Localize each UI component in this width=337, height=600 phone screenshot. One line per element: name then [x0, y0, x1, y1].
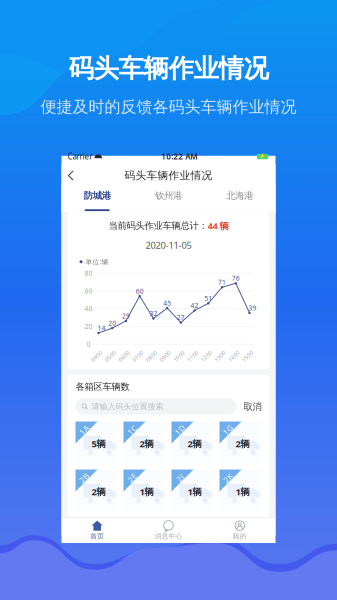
staticText: 11:00 [186, 353, 199, 360]
staticText: 10:22 AM [161, 151, 197, 162]
staticText: 2辆 [139, 437, 153, 450]
staticText: 2B [79, 473, 89, 483]
staticText: 请输入码头位置搜索 [91, 402, 163, 411]
staticText: 10:00 [172, 353, 185, 360]
staticText: 14:00 [227, 353, 240, 360]
staticText: 当前码头作业车辆总计： [108, 220, 207, 231]
staticText: 5辆 [91, 437, 105, 450]
staticText: 钦州港 [155, 190, 182, 201]
staticText: 60 [84, 286, 92, 295]
staticText: 1G [222, 425, 233, 435]
button[interactable]: 首页 [61, 518, 133, 543]
staticText: 12:00 [200, 353, 213, 360]
button[interactable]: 1D [171, 421, 213, 463]
staticText: 45 [163, 299, 171, 308]
staticText: 1辆 [187, 485, 201, 498]
staticText: Carrier [67, 151, 92, 162]
staticText: 40 [84, 304, 92, 313]
staticText: 29 [122, 311, 130, 320]
staticText: 我的 [233, 532, 247, 540]
staticText: 76 [232, 274, 240, 283]
button[interactable]: 取消 [243, 398, 261, 414]
staticText: 08:00 [145, 353, 158, 360]
button[interactable]: 钦州港 [133, 186, 204, 211]
button[interactable]: 1G [219, 421, 261, 463]
staticText: 20 [108, 319, 116, 328]
staticText: 27 [177, 313, 185, 322]
staticText: 1辆 [235, 485, 249, 498]
staticText: 14 [97, 323, 105, 332]
staticText: 80 [84, 269, 92, 278]
button[interactable]: 2K [219, 469, 261, 511]
button[interactable]: 2E [123, 469, 165, 511]
staticText: 71 [218, 278, 226, 287]
staticText: 2辆 [235, 437, 249, 450]
staticText: 2020-11-05 [145, 239, 191, 251]
staticText: 2K [223, 473, 233, 483]
staticText: 1A [79, 425, 89, 435]
staticText: 取消 [243, 401, 261, 412]
staticText: 单位:辆 [85, 257, 108, 266]
staticText: 2辆 [91, 485, 105, 498]
staticText: 60 [136, 287, 144, 296]
button[interactable]: 2B [75, 469, 117, 511]
staticText: 42 [191, 301, 199, 310]
staticText: 05:00 [104, 353, 117, 360]
staticText: 码头车辆作业情况 [124, 169, 212, 182]
staticText: 06:00 [117, 353, 130, 360]
button[interactable]: 防城港 [61, 186, 133, 211]
staticText: 2E [127, 473, 136, 483]
staticText: 0 [86, 340, 90, 349]
staticText: 07:00 [131, 353, 144, 360]
staticText: 04:00 [90, 353, 103, 360]
staticText: 51 [204, 294, 212, 303]
staticText: 09:00 [159, 353, 172, 360]
staticText: 2J [176, 473, 183, 483]
staticText: 13:00 [213, 353, 226, 360]
staticText: 码头车辆作业情况 [68, 53, 268, 84]
staticText: 15:00 [241, 353, 254, 360]
staticText: 便捷及时的反馈各码头车辆作业情况 [40, 97, 296, 117]
staticText: 防城港 [84, 190, 111, 201]
staticText: 20 [84, 322, 92, 331]
staticText: 1C [127, 425, 137, 435]
staticText: 首页 [90, 532, 104, 540]
button[interactable]: 1A [75, 421, 117, 463]
staticText: 44 辆 [207, 219, 228, 232]
button[interactable]: 2J [171, 469, 213, 511]
button[interactable]: 北海港 [204, 186, 275, 211]
staticText: 2辆 [187, 437, 201, 450]
staticText: 消息中心 [154, 532, 182, 540]
staticText: 北海港 [226, 190, 253, 201]
staticText: 39 [248, 303, 256, 312]
staticText: 1辆 [139, 485, 153, 498]
button[interactable]: 消息中心 [133, 518, 204, 543]
staticText: 1D [174, 425, 185, 435]
button[interactable]: 1C [123, 421, 165, 463]
staticText: 各箱区车辆数 [75, 381, 129, 392]
staticText: ⚡ [259, 153, 266, 160]
staticText: 32 [149, 309, 157, 318]
button[interactable]: 我的 [204, 518, 275, 543]
button[interactable]: 返回 [61, 164, 80, 186]
